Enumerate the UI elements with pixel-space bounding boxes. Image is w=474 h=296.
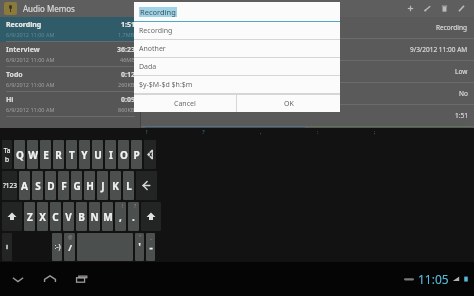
button[interactable]: Backspace bbox=[144, 140, 156, 169]
button[interactable]: T bbox=[66, 140, 77, 169]
staticText: K bbox=[112, 179, 119, 193]
button[interactable]: O bbox=[118, 140, 129, 169]
staticText: 860KB bbox=[118, 106, 135, 113]
button[interactable]: Shift bbox=[141, 202, 161, 231]
button[interactable]: / bbox=[64, 233, 75, 261]
button[interactable]: I bbox=[105, 140, 116, 169]
button[interactable]: $y-$M-$d $h:$m bbox=[134, 76, 340, 93]
button[interactable]: No bbox=[141, 83, 474, 104]
button[interactable]: Enter bbox=[136, 171, 157, 200]
button[interactable]: Low bbox=[141, 61, 474, 82]
button[interactable]: Add bbox=[402, 0, 419, 17]
button[interactable]: Settings bbox=[2, 233, 12, 261]
button[interactable]: :-) bbox=[52, 233, 62, 261]
button[interactable]: B bbox=[76, 202, 87, 231]
staticText: O bbox=[120, 148, 128, 162]
staticText: Recording bbox=[139, 26, 173, 36]
staticText: F bbox=[61, 179, 67, 193]
button[interactable]: Back bbox=[10, 271, 26, 287]
button[interactable]: S bbox=[32, 171, 43, 200]
button[interactable]: V bbox=[63, 202, 74, 231]
staticText: 1:51 bbox=[455, 111, 468, 120]
button[interactable]: Q bbox=[14, 140, 25, 169]
button[interactable]: Interview bbox=[0, 42, 140, 67]
staticText: H bbox=[86, 179, 94, 193]
button[interactable]: Shift bbox=[2, 202, 22, 231]
staticText: I bbox=[109, 148, 113, 162]
staticText: ? bbox=[202, 128, 205, 136]
button[interactable]: G bbox=[71, 171, 82, 200]
button[interactable]: P bbox=[131, 140, 142, 169]
button[interactable]: Another bbox=[134, 40, 340, 57]
staticText: D bbox=[47, 179, 55, 193]
button[interactable]: C bbox=[50, 202, 61, 231]
button[interactable]: W bbox=[27, 140, 38, 169]
staticText: ?123 bbox=[3, 181, 17, 190]
staticText: B bbox=[78, 210, 85, 224]
button[interactable]: Cancel bbox=[134, 95, 236, 112]
button[interactable]: , bbox=[115, 202, 126, 231]
button[interactable]: . bbox=[128, 202, 139, 231]
staticText: Q bbox=[16, 148, 24, 162]
button[interactable]: ' bbox=[135, 233, 144, 261]
button[interactable]: X bbox=[37, 202, 48, 231]
staticText: / bbox=[68, 241, 72, 253]
button[interactable]: Recording bbox=[141, 17, 474, 38]
button[interactable]: Record bbox=[419, 0, 436, 17]
staticText: 11:05 bbox=[418, 271, 449, 287]
button[interactable]: Todo bbox=[0, 67, 140, 92]
button[interactable]: Tab bbox=[2, 140, 12, 169]
staticText: OK bbox=[284, 99, 294, 109]
button[interactable]: 1:51 bbox=[141, 105, 474, 126]
staticText: 36:23 bbox=[117, 45, 135, 55]
button[interactable]: D bbox=[45, 171, 56, 200]
staticText: : bbox=[317, 128, 319, 136]
button[interactable]: R bbox=[53, 140, 64, 169]
button[interactable]: M bbox=[102, 202, 113, 231]
button[interactable]: Recording bbox=[0, 17, 140, 42]
staticText: , bbox=[119, 210, 122, 224]
button[interactable]: H bbox=[84, 171, 95, 200]
button[interactable]: J bbox=[97, 171, 108, 200]
staticText: 0:12 bbox=[121, 70, 135, 80]
button[interactable]: U bbox=[92, 140, 103, 169]
button[interactable]: Hi bbox=[0, 92, 140, 117]
staticText: No bbox=[459, 89, 468, 98]
button[interactable]: F bbox=[58, 171, 69, 200]
staticText: _ bbox=[150, 234, 153, 241]
staticText: Cancel bbox=[174, 99, 196, 109]
button[interactable]: Z bbox=[24, 202, 35, 231]
button[interactable]: N bbox=[89, 202, 100, 231]
button[interactable]: - bbox=[146, 233, 155, 261]
staticText: W bbox=[28, 148, 38, 162]
staticText: Recording bbox=[436, 23, 468, 32]
button[interactable]: Delete bbox=[436, 0, 453, 17]
staticText: $y-$M-$d $h:$m bbox=[139, 80, 193, 90]
button[interactable]: 9/3/2012 11:00 AM bbox=[141, 39, 474, 60]
button[interactable]: K bbox=[110, 171, 121, 200]
staticText: ; bbox=[374, 128, 376, 136]
staticText: . bbox=[132, 210, 135, 224]
button[interactable]: OK bbox=[237, 95, 340, 112]
staticText: U bbox=[94, 148, 102, 162]
staticText: V bbox=[65, 210, 72, 224]
staticText: C bbox=[52, 210, 59, 224]
staticText: N bbox=[90, 210, 99, 224]
staticText: Y bbox=[81, 148, 88, 162]
button[interactable]: Recording bbox=[134, 2, 340, 21]
button[interactable]: ?123 bbox=[2, 171, 17, 200]
button[interactable]: E bbox=[40, 140, 51, 169]
button[interactable]: L bbox=[123, 171, 134, 200]
button[interactable]: Home bbox=[42, 271, 58, 287]
button[interactable]: Edit bbox=[453, 0, 470, 17]
button[interactable]: A bbox=[19, 171, 30, 200]
button[interactable]: Dada bbox=[134, 58, 340, 75]
button[interactable]: Recording bbox=[134, 22, 340, 39]
staticText: ' bbox=[138, 240, 141, 254]
button[interactable]: Recents bbox=[74, 271, 90, 287]
button[interactable]: Y bbox=[79, 140, 90, 169]
